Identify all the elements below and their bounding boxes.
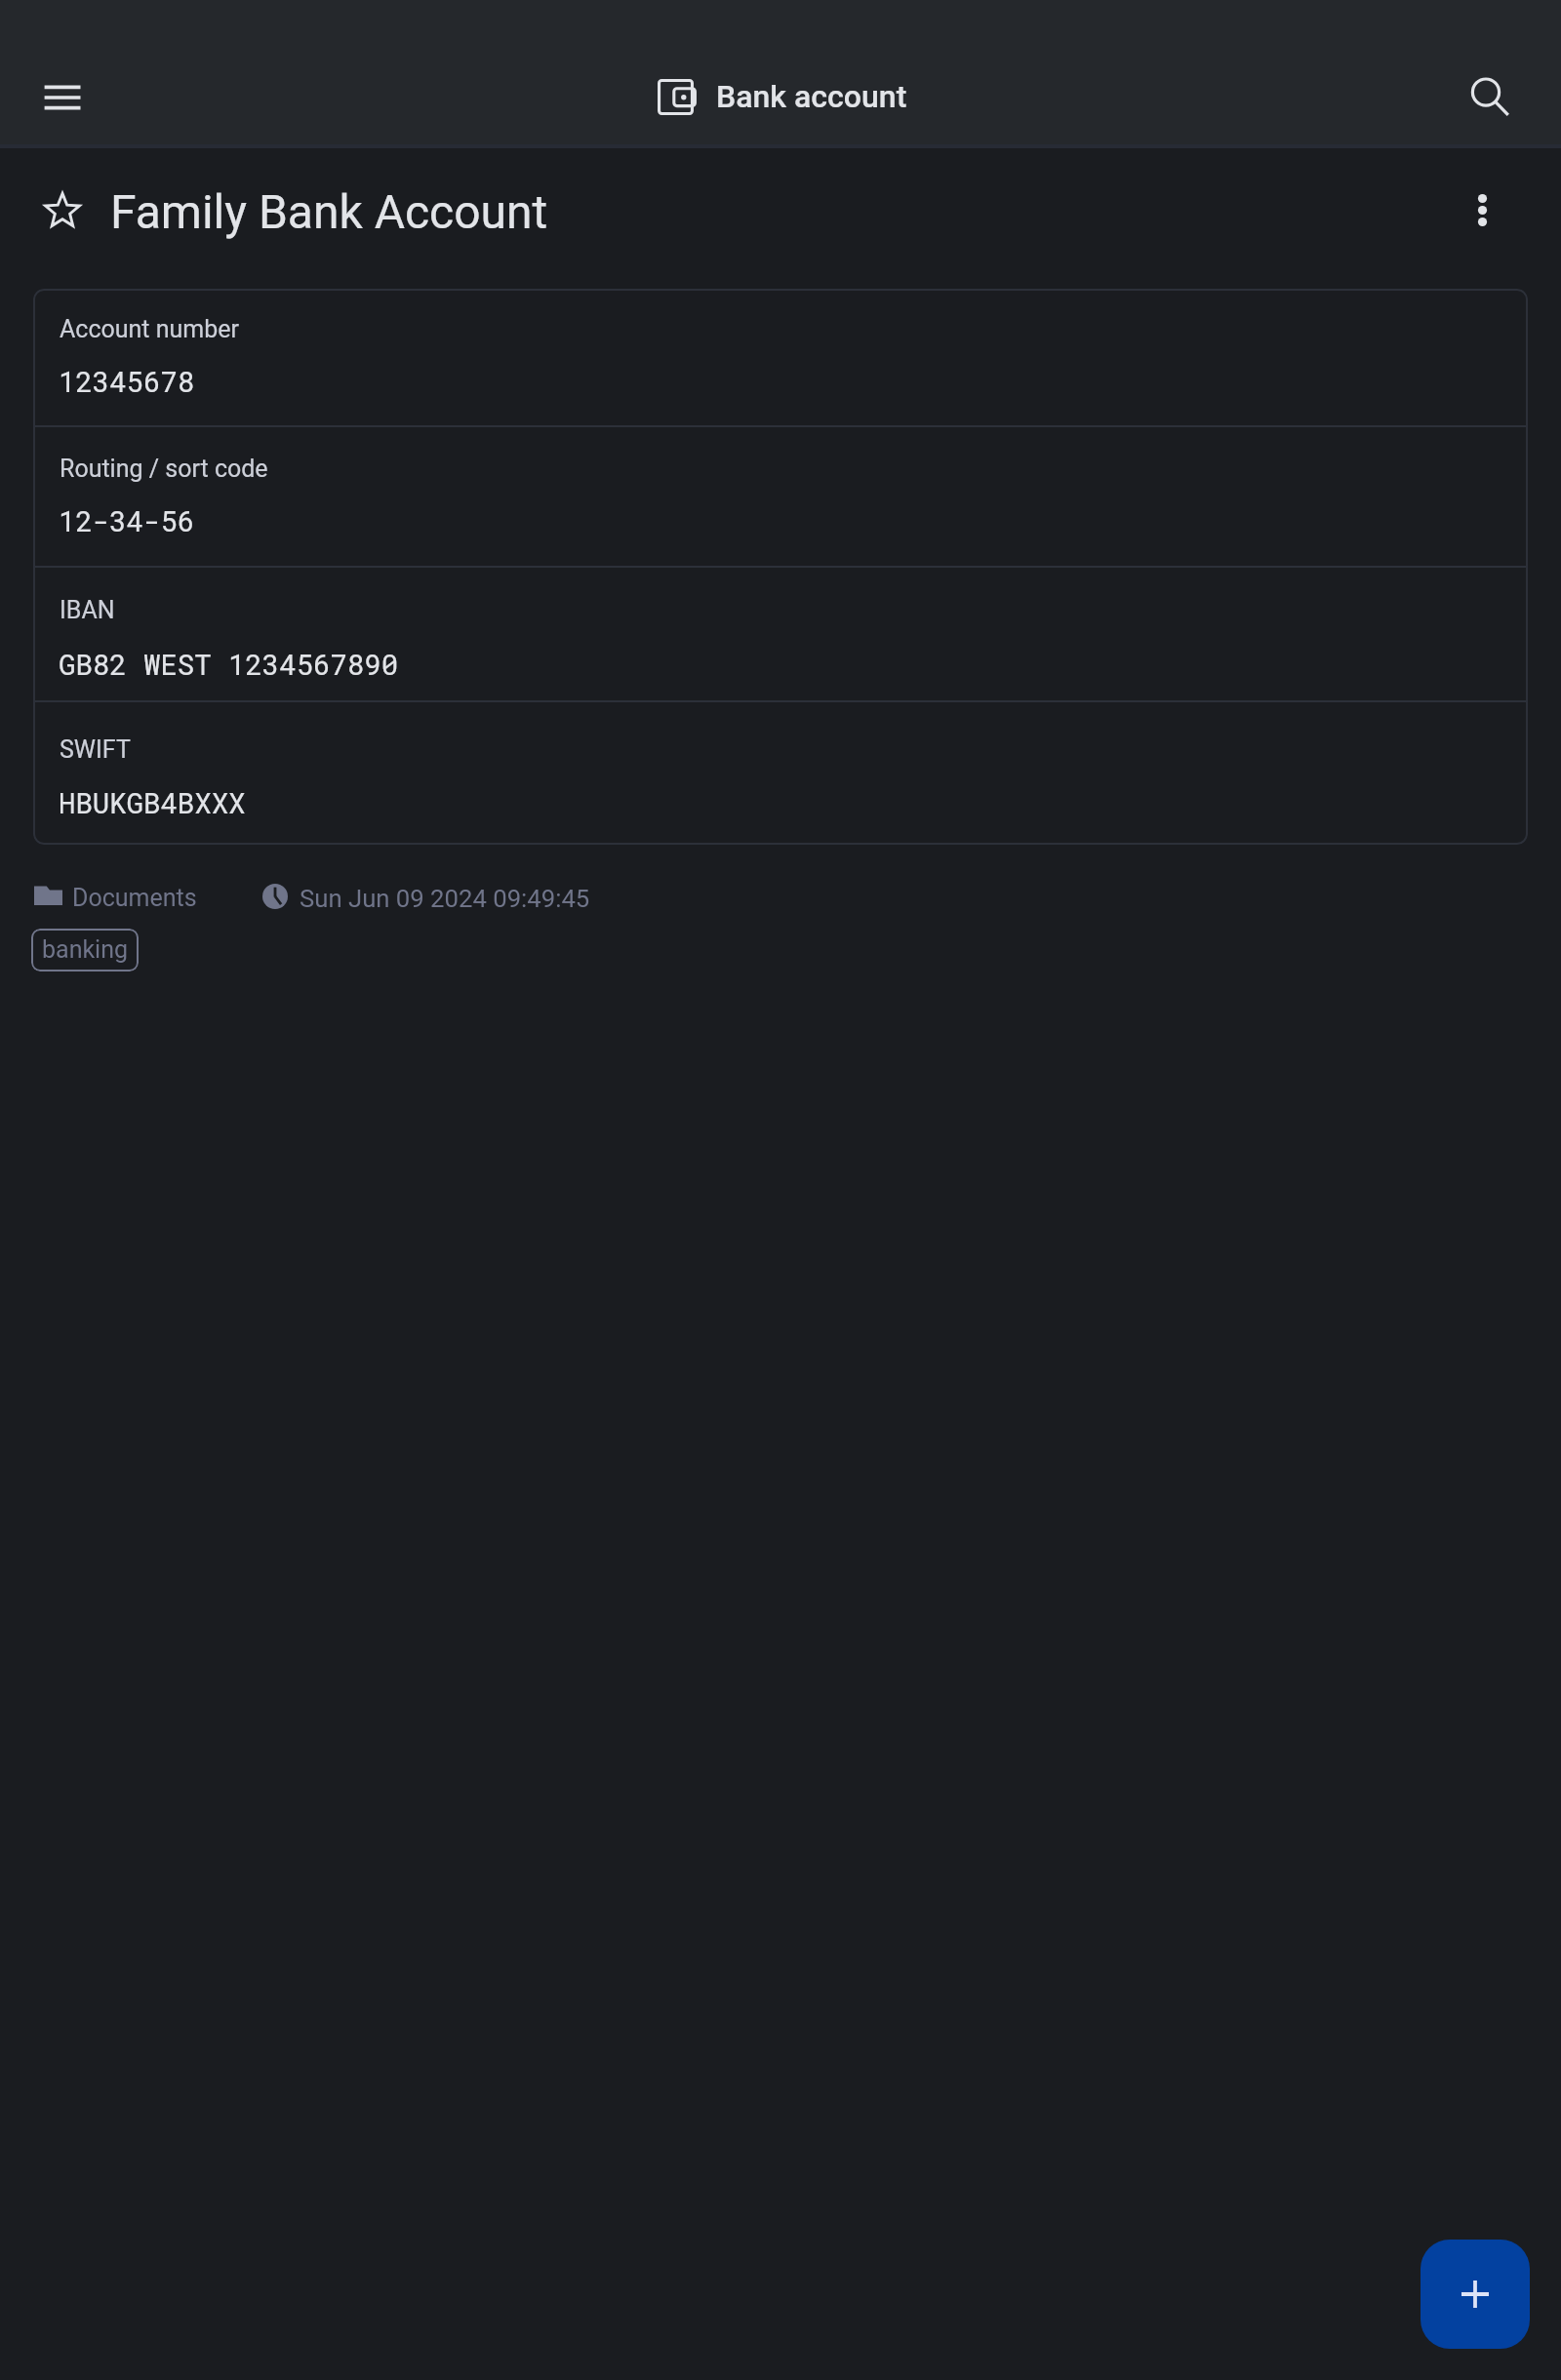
button[interactable]: Add entry — [1421, 2240, 1530, 2349]
button[interactable]: IBAN — [33, 568, 1528, 700]
staticText: Family Bank Account — [110, 184, 548, 239]
button[interactable]: Account number — [33, 291, 1528, 425]
button[interactable]: Routing / sort code — [33, 427, 1528, 566]
button[interactable]: SWIFT — [33, 702, 1528, 845]
button[interactable]: Search — [1439, 44, 1533, 138]
staticText: Bank account — [716, 78, 907, 115]
staticText: banking — [42, 935, 129, 964]
staticText: 12-34-56 — [59, 502, 195, 539]
button[interactable]: banking — [31, 929, 139, 972]
staticText: Sun Jun 09 2024 09:49:45 — [300, 884, 590, 913]
button[interactable]: Family Bank Account — [0, 148, 1561, 269]
button[interactable]: More options — [1435, 163, 1529, 257]
button[interactable]: Open navigation menu — [16, 44, 109, 138]
staticText: GB82 WEST 1234567890 — [59, 646, 399, 683]
staticText: Account number — [60, 315, 239, 343]
staticText: HBUKGB4BXXX — [59, 784, 246, 821]
staticText: 12345678 — [59, 363, 195, 400]
staticText: Routing / sort code — [60, 455, 268, 483]
staticText: Documents — [72, 884, 197, 912]
staticText: SWIFT — [60, 735, 131, 764]
staticText: IBAN — [60, 596, 115, 624]
